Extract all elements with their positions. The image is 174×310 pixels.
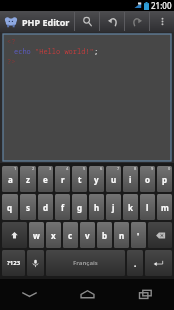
staticText: x [51, 230, 56, 241]
staticText: d [43, 202, 49, 213]
button[interactable]: Search [75, 11, 99, 32]
button[interactable]: r [55, 166, 70, 192]
button[interactable]: <? [3, 34, 171, 161]
staticText: 1 [14, 166, 17, 171]
staticText: p [162, 174, 168, 185]
button[interactable]: ' [131, 222, 146, 248]
staticText: j [112, 202, 115, 213]
staticText: o [145, 174, 150, 185]
button[interactable]: Voice input [27, 250, 44, 276]
button[interactable]: b [97, 222, 112, 248]
button[interactable]: n [114, 222, 129, 248]
button[interactable]: Undo [100, 11, 124, 32]
staticText: 21:00 [151, 0, 172, 11]
staticText: 2 [32, 166, 35, 171]
button[interactable]: h [89, 194, 104, 220]
button[interactable]: s [20, 194, 36, 220]
staticText: 8 [134, 166, 137, 171]
button[interactable]: Redo [125, 11, 149, 32]
button[interactable]: e [38, 166, 53, 192]
staticText: w [33, 230, 40, 241]
button[interactable]: a [2, 166, 18, 192]
button[interactable]: PHP Editor [0, 11, 74, 32]
button[interactable]: More options [150, 11, 174, 32]
button[interactable]: Enter [145, 250, 172, 276]
staticText: 4 [66, 166, 69, 171]
staticText: ?123 [7, 259, 21, 267]
staticText: r [61, 174, 65, 185]
button[interactable]: k [123, 194, 138, 220]
staticText: ; [94, 47, 99, 57]
staticText: 6 [100, 166, 103, 171]
button[interactable]: Français [46, 250, 125, 276]
staticText: u [111, 174, 117, 185]
staticText: q [7, 202, 13, 213]
staticText: Français [73, 259, 98, 267]
staticText: a [8, 174, 13, 185]
staticText: m [161, 202, 169, 213]
staticText: ?> [7, 57, 16, 67]
staticText: 3 [49, 166, 52, 171]
staticText: t [78, 174, 82, 185]
staticText: PHP Editor [22, 16, 70, 28]
button[interactable]: i [123, 166, 138, 192]
staticText: v [85, 230, 90, 241]
staticText: 0 [168, 166, 171, 171]
staticText: 5 [83, 166, 86, 171]
button[interactable]: t [72, 166, 87, 192]
button[interactable]: p [157, 166, 172, 192]
staticText: c [68, 230, 73, 241]
staticText: . [134, 258, 137, 269]
staticText: g [77, 202, 83, 213]
staticText: y [94, 174, 99, 185]
staticText: n [119, 230, 125, 241]
staticText: z [26, 174, 30, 185]
button[interactable]: d [38, 194, 53, 220]
staticText: l [146, 202, 149, 213]
staticText: ' [137, 230, 140, 241]
staticText: f [61, 202, 65, 213]
button[interactable]: c [63, 222, 78, 248]
button[interactable]: v [80, 222, 95, 248]
button[interactable]: w [29, 222, 44, 248]
button[interactable]: q [2, 194, 18, 220]
button[interactable]: Backspace [148, 222, 172, 248]
button[interactable]: Shift [2, 222, 27, 248]
staticText: h [94, 202, 100, 213]
staticText: "Hello world!" [35, 47, 94, 57]
staticText: 7 [117, 166, 120, 171]
button[interactable]: l [140, 194, 155, 220]
staticText: <? [7, 37, 16, 47]
button[interactable]: ?123 [2, 250, 25, 276]
staticText: echo [14, 47, 35, 57]
button[interactable]: j [106, 194, 121, 220]
staticText: i [129, 174, 132, 185]
staticText: k [128, 202, 133, 213]
button[interactable]: u [106, 166, 121, 192]
staticText: e [43, 174, 48, 185]
button[interactable]: y [89, 166, 104, 192]
button[interactable]: f [55, 194, 70, 220]
button[interactable]: Recent apps [116, 279, 174, 310]
staticText: 9 [151, 166, 154, 171]
staticText: s [26, 202, 31, 213]
button[interactable]: . [127, 250, 143, 276]
button[interactable]: Home [58, 279, 116, 310]
button[interactable]: m [157, 194, 172, 220]
button[interactable]: o [140, 166, 155, 192]
button[interactable]: x [46, 222, 61, 248]
button[interactable]: g [72, 194, 87, 220]
button[interactable]: Back [0, 279, 58, 310]
button[interactable]: z [20, 166, 36, 192]
staticText: b [102, 230, 108, 241]
